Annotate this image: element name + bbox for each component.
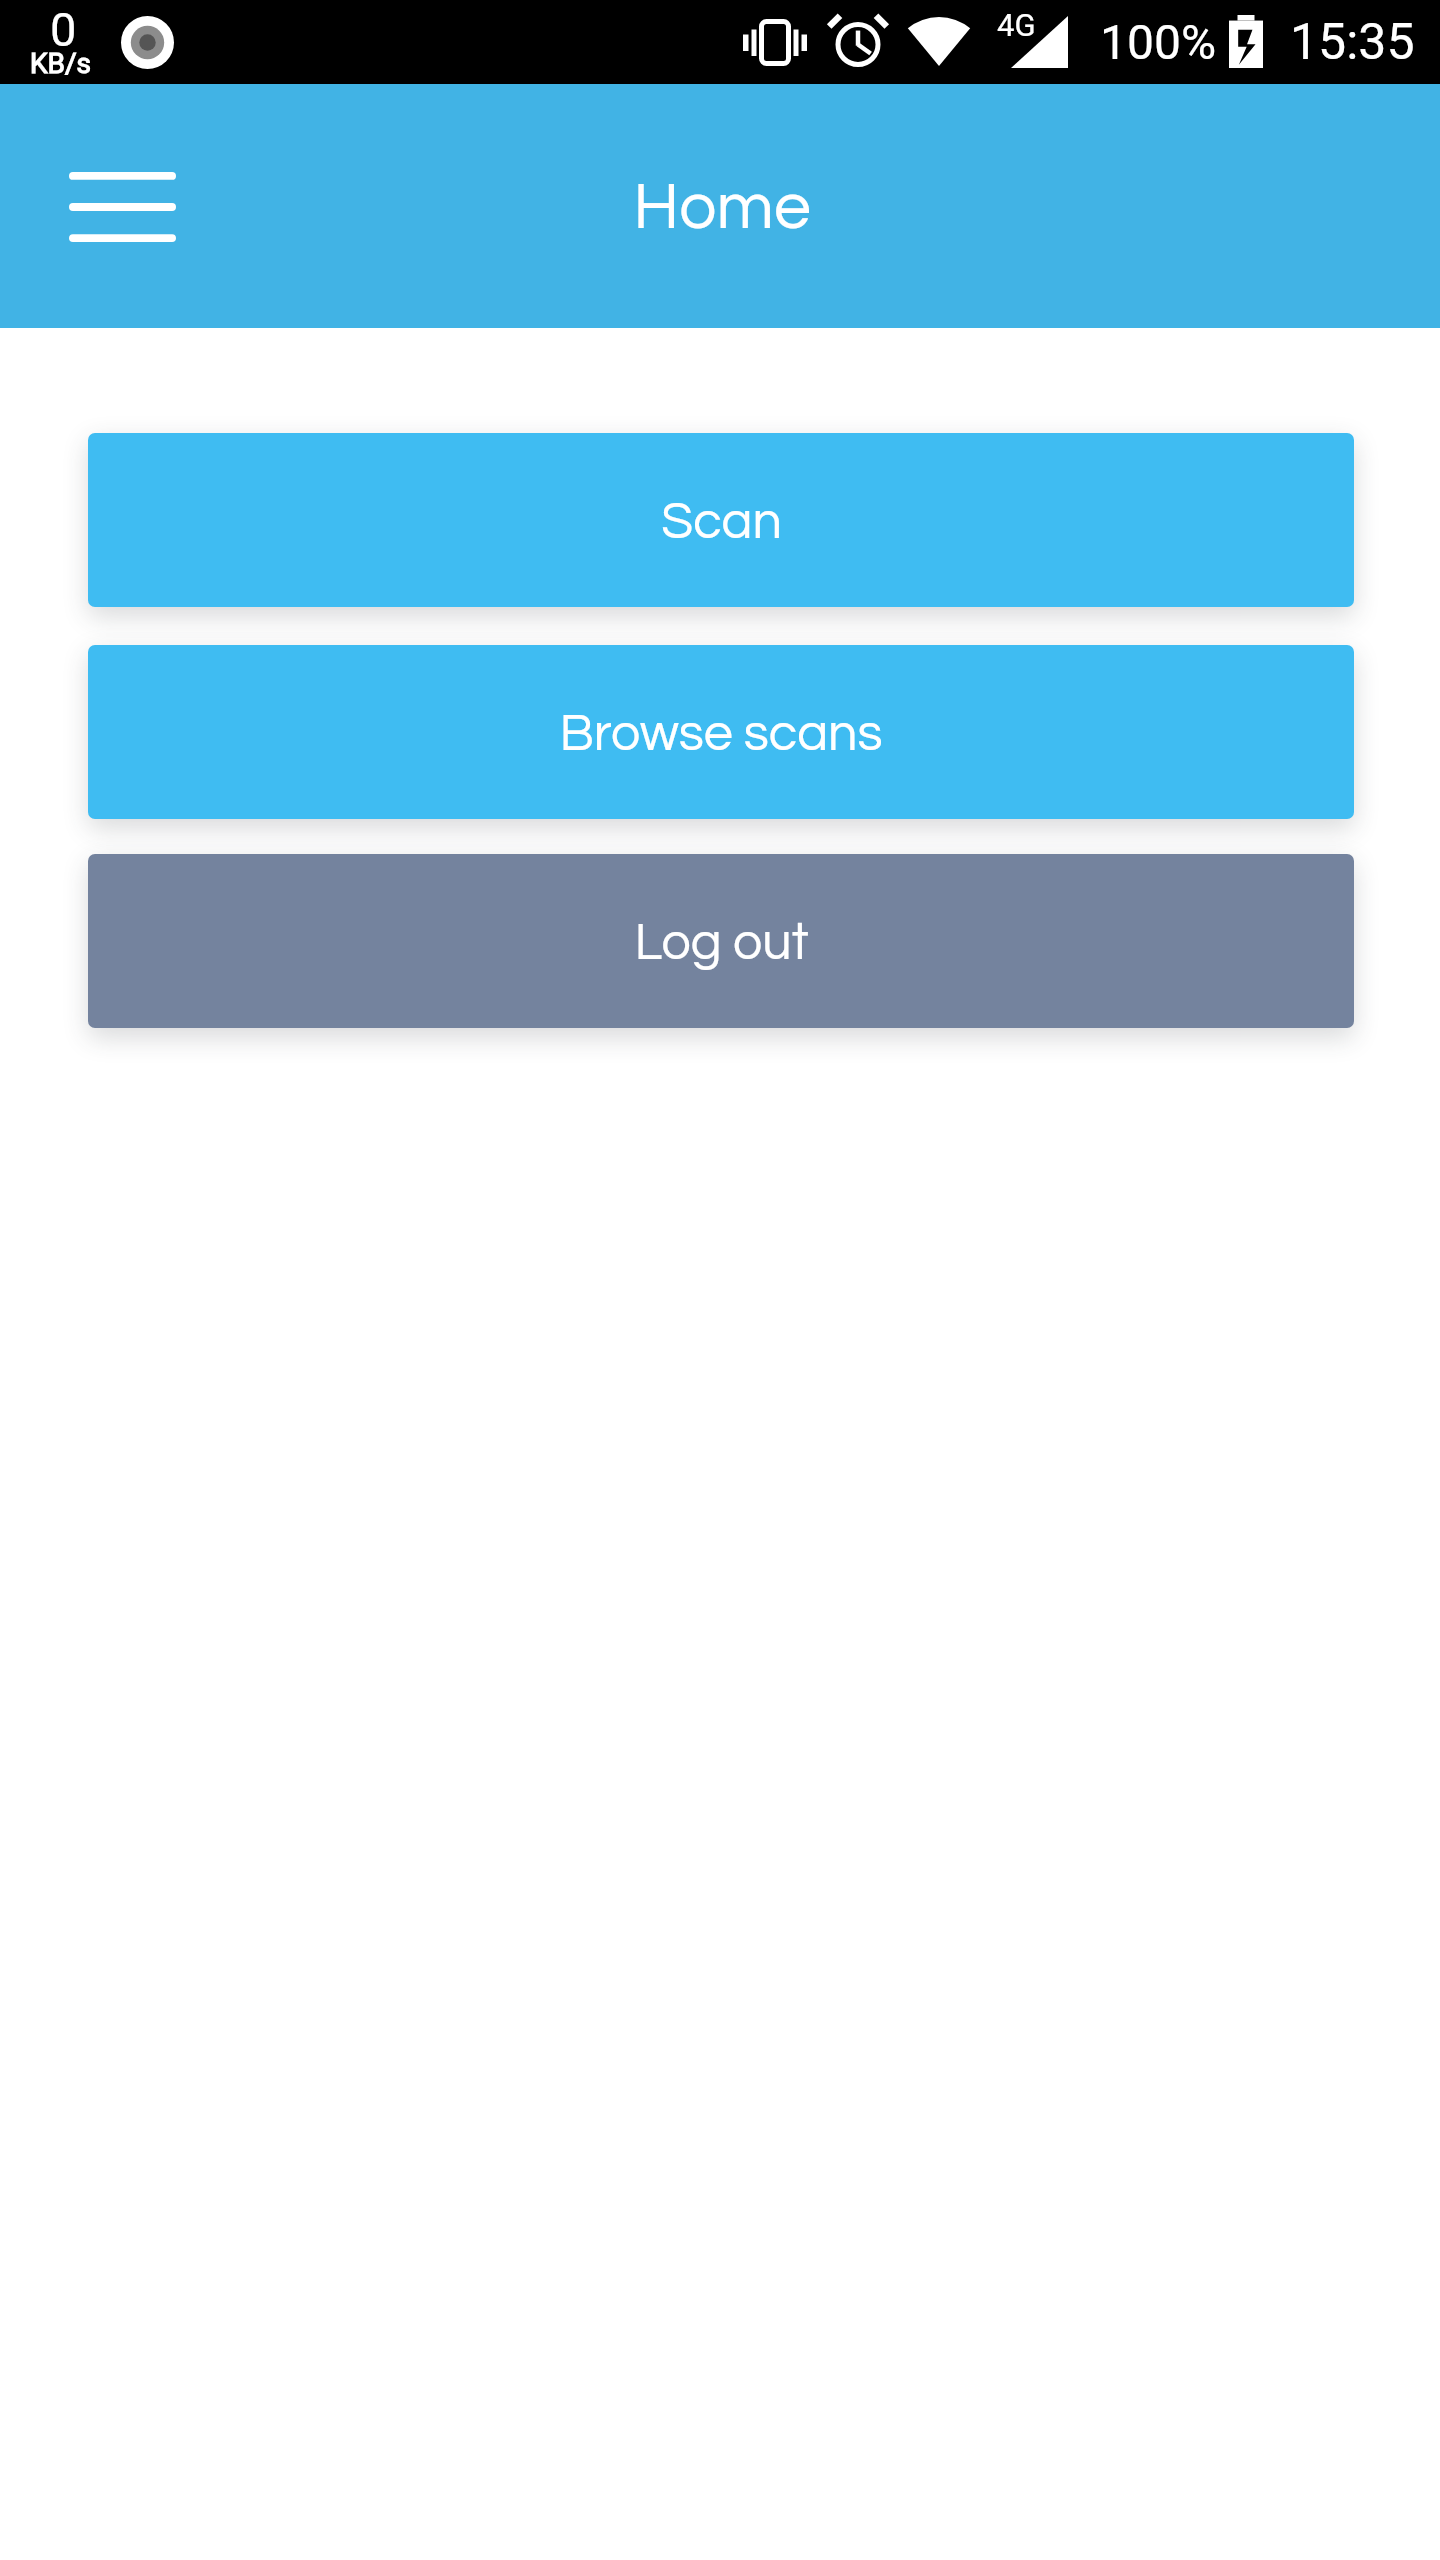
staticText: KB/s xyxy=(30,47,92,80)
button[interactable]: Browse scans xyxy=(88,645,1354,819)
staticText: Browse scans xyxy=(559,707,883,761)
staticText: Log out xyxy=(634,916,809,970)
staticText: 0 xyxy=(50,2,77,57)
button[interactable]: Log out xyxy=(88,854,1354,1028)
button[interactable]: Scan xyxy=(88,433,1354,607)
staticText: 100% xyxy=(1100,14,1217,70)
button[interactable]: Open navigation menu xyxy=(33,136,211,277)
staticText: Home xyxy=(633,174,811,242)
staticText: 15:35 xyxy=(1290,13,1415,72)
staticText: 4G xyxy=(997,7,1036,43)
staticText: Scan xyxy=(661,495,782,549)
